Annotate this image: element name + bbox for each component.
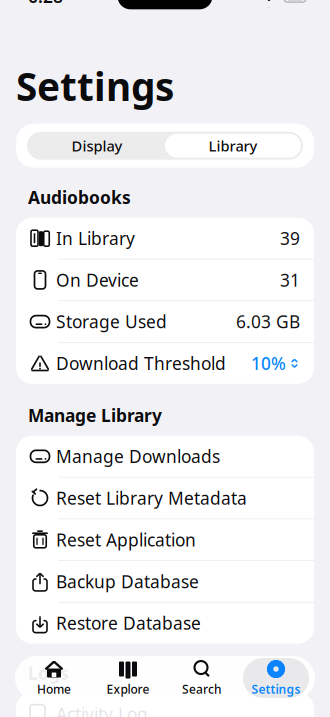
staticText: Display	[71, 136, 122, 155]
button[interactable]: Download Threshold	[16, 343, 314, 384]
button[interactable]: Explore	[95, 658, 161, 698]
button[interactable]: Storage Used	[16, 301, 314, 343]
button[interactable]: In Library	[16, 218, 314, 259]
button[interactable]: Search	[169, 658, 235, 698]
staticText: Restore Database	[56, 612, 201, 635]
staticText: Reset Application	[56, 528, 196, 551]
button[interactable]: Settings	[243, 658, 309, 698]
staticText: Reset Library Metadata	[56, 486, 247, 509]
staticText: In Library	[56, 227, 135, 250]
button[interactable]: Home	[21, 658, 87, 698]
button[interactable]: Restore Database	[16, 603, 314, 644]
button[interactable]: Backup Database	[16, 561, 314, 603]
staticText: Settings	[251, 681, 300, 697]
staticText: Search	[182, 681, 222, 697]
staticText: Download Threshold	[56, 352, 226, 375]
button[interactable]: On Device	[16, 259, 314, 301]
staticText: 6.03 GB	[236, 310, 300, 333]
button[interactable]: Reset Library Metadata	[16, 477, 314, 519]
button[interactable]: Display	[29, 134, 165, 158]
button[interactable]: Reset Application	[16, 519, 314, 561]
staticText: Activity Log	[56, 702, 148, 717]
staticText: Library	[208, 136, 257, 155]
staticText: Storage Used	[56, 310, 167, 333]
staticText: Home	[37, 681, 71, 697]
staticText: 39	[280, 227, 300, 250]
staticText: 6:28	[28, 0, 63, 8]
staticText: 10%	[251, 352, 286, 375]
staticText: Audiobooks	[28, 186, 131, 209]
staticText: On Device	[56, 268, 139, 291]
button[interactable]: Manage Downloads	[16, 436, 314, 477]
staticText: Explore	[106, 681, 149, 697]
staticText: Manage Downloads	[56, 445, 220, 468]
staticText: 31	[280, 268, 300, 291]
staticText: Backup Database	[56, 570, 199, 593]
staticText: Manage Library	[28, 404, 162, 427]
button[interactable]: Library	[165, 134, 301, 158]
staticText: Settings	[16, 60, 174, 112]
staticText: Logs	[28, 662, 69, 685]
